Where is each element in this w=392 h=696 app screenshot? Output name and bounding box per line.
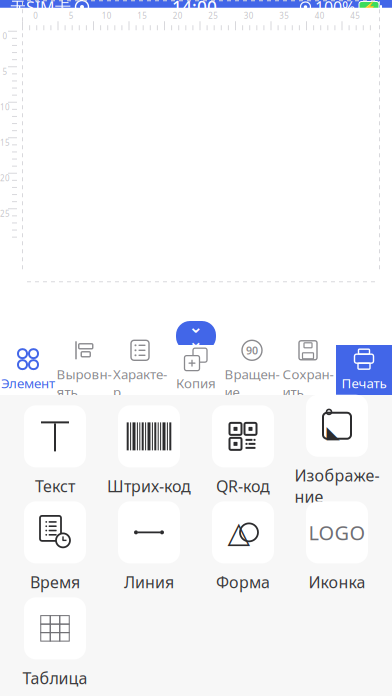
- staticText: Форма: [216, 571, 270, 593]
- button[interactable]: Select all: [309, 17, 341, 59]
- staticText: Копия: [176, 374, 216, 392]
- button[interactable]: Zoom out: [140, 17, 170, 59]
- staticText: 0: [33, 10, 38, 21]
- button[interactable]: Текст: [8, 403, 102, 499]
- button[interactable]: Back: [10, 17, 46, 59]
- staticText: Таблица: [22, 667, 87, 689]
- button[interactable]: Unlock: [268, 17, 300, 59]
- button[interactable]: Время: [8, 499, 102, 595]
- staticText: LOGO: [308, 519, 365, 546]
- staticText: 40: [315, 10, 325, 21]
- button[interactable]: LOGO: [290, 499, 384, 595]
- button[interactable]: Копия: [168, 345, 224, 395]
- staticText: 0: [2, 31, 7, 41]
- staticText: Сохранить: [282, 365, 333, 401]
- button[interactable]: Элемент: [0, 345, 56, 395]
- staticText: Текст: [35, 475, 75, 497]
- staticText: 45: [350, 10, 360, 21]
- staticText: Линия: [124, 571, 174, 593]
- button[interactable]: ◣: [290, 403, 384, 499]
- staticText: 25: [0, 208, 10, 219]
- button[interactable]: Redo: [98, 17, 132, 59]
- button[interactable]: Zoom in: [229, 17, 259, 59]
- staticText: ⌄: [188, 317, 203, 336]
- staticText: ‹: [22, 15, 33, 61]
- staticText: QR-код: [216, 475, 270, 497]
- button[interactable]: Undo: [55, 17, 89, 59]
- staticText: 10: [102, 10, 112, 21]
- staticText: Элемент: [1, 374, 55, 392]
- staticText: 10: [0, 102, 10, 112]
- button[interactable]: Collapse panel: [168, 321, 224, 351]
- staticText: 30: [244, 10, 254, 21]
- staticText: 90: [246, 343, 258, 357]
- staticText: 100%: [315, 0, 355, 18]
- button[interactable]: Таблица: [8, 595, 102, 691]
- button[interactable]: Штрих-код: [102, 403, 196, 499]
- staticText: ✓: [318, 28, 333, 48]
- staticText: ⚡: [362, 1, 375, 13]
- staticText: Вращение: [224, 365, 279, 401]
- staticText: 25: [208, 10, 218, 21]
- staticText: Печать: [341, 374, 386, 392]
- staticText: 无SIM卡: [10, 0, 71, 18]
- button[interactable]: Печать: [336, 345, 392, 395]
- staticText: 20: [0, 173, 10, 183]
- button[interactable]: Линия: [102, 499, 196, 595]
- staticText: 5: [2, 66, 7, 77]
- staticText: Характер…: [113, 365, 167, 401]
- staticText: Иконка: [308, 571, 365, 593]
- button[interactable]: QR-код: [196, 403, 290, 499]
- staticText: 100%: [170, 23, 229, 53]
- button[interactable]: Settings: [350, 17, 382, 59]
- staticText: 15: [0, 137, 10, 148]
- button[interactable]: 90: [224, 345, 280, 395]
- button[interactable]: Выровнять: [56, 345, 112, 395]
- staticText: 5: [69, 10, 74, 21]
- staticText: ◣: [326, 422, 339, 442]
- button[interactable]: Характер…: [112, 345, 168, 395]
- button[interactable]: △: [196, 499, 290, 595]
- button[interactable]: 100%: [170, 17, 229, 59]
- staticText: 35: [279, 10, 289, 21]
- staticText: 15: [137, 10, 147, 21]
- staticText: Штрих-код: [107, 475, 191, 497]
- staticText: △: [227, 516, 250, 549]
- staticText: Время: [30, 571, 80, 593]
- staticText: 20: [173, 10, 183, 21]
- staticText: Выровнять: [56, 365, 111, 401]
- staticText: 14:00: [172, 0, 217, 18]
- button[interactable]: Сохранить: [280, 345, 336, 395]
- staticText: ⌄: [188, 331, 203, 351]
- staticText: Изображение: [294, 465, 379, 507]
